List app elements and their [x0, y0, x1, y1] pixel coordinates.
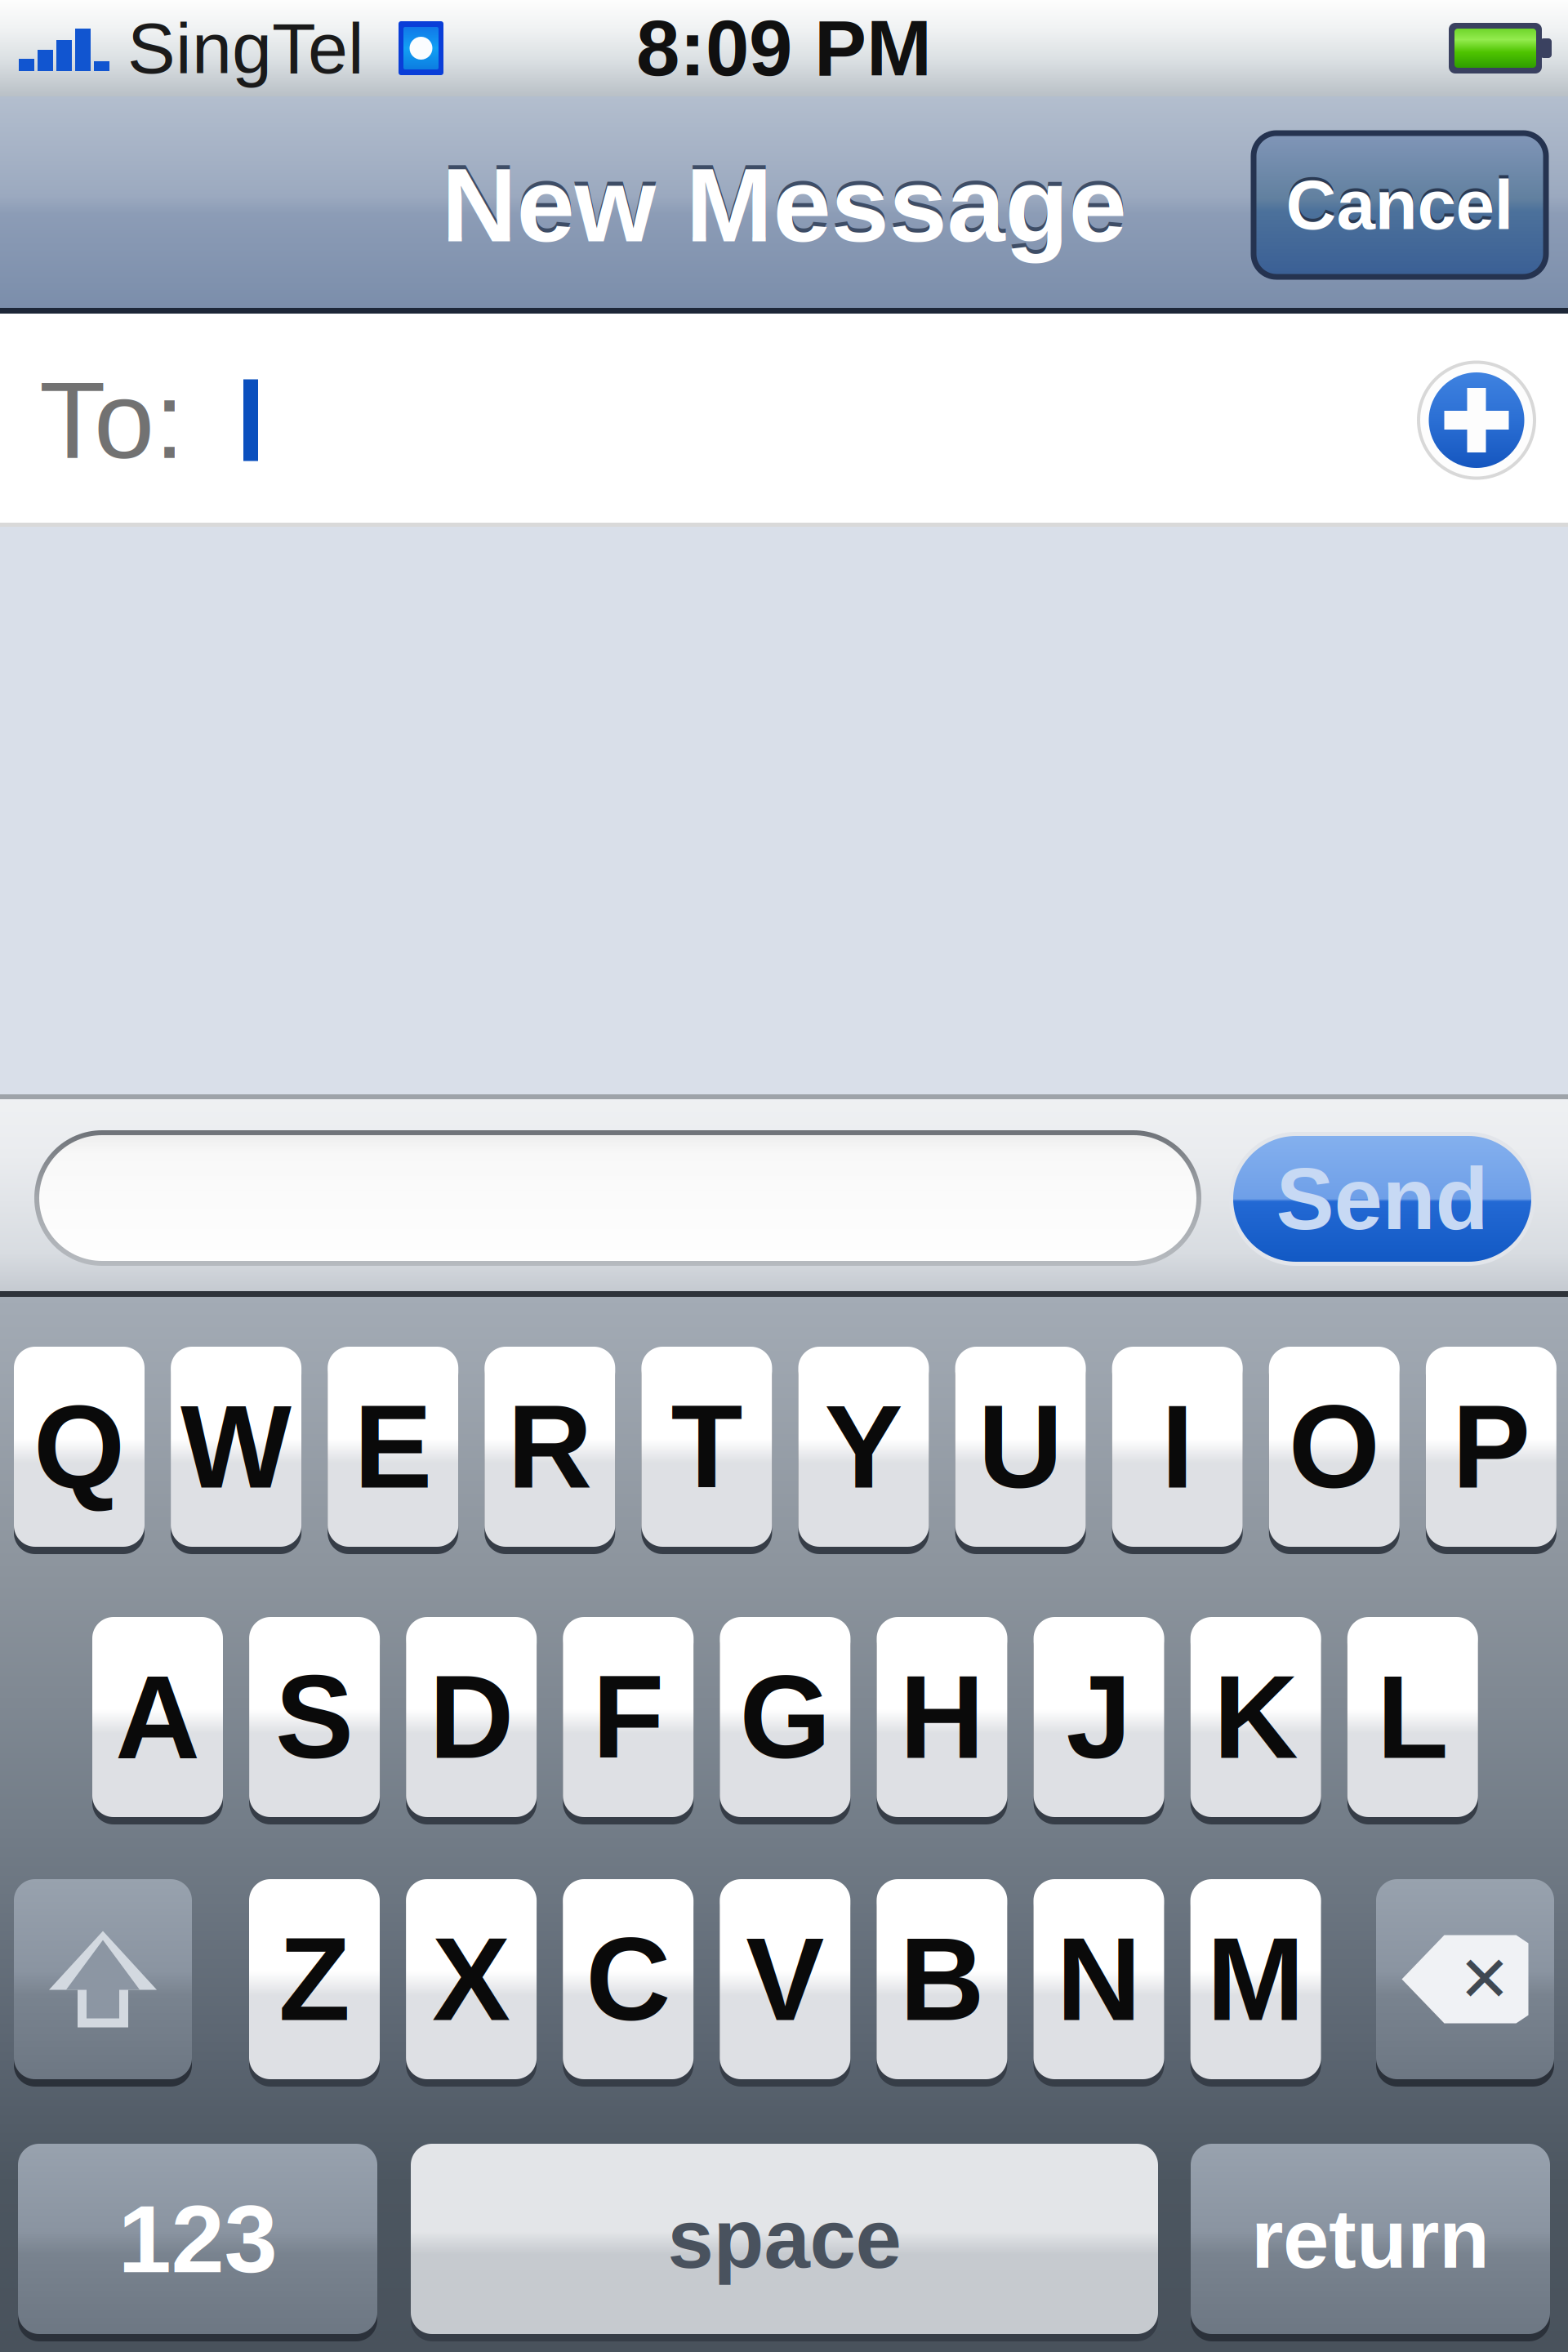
button[interactable]: space — [411, 2144, 1158, 2334]
button[interactable]: U — [955, 1347, 1086, 1547]
button[interactable]: Delete — [1376, 1879, 1554, 2079]
staticText: SingTel — [127, 8, 364, 88]
staticText: Send — [1276, 1150, 1488, 1248]
staticText: A — [115, 1651, 200, 1783]
staticText: Cancel — [1286, 166, 1514, 244]
button[interactable]: Send — [1229, 1132, 1535, 1266]
button[interactable]: 123 — [18, 2144, 377, 2334]
staticText: ✕ — [1458, 1942, 1511, 2016]
staticText: R — [507, 1381, 592, 1512]
staticText: H — [900, 1651, 984, 1783]
button[interactable]: S — [249, 1617, 380, 1817]
staticText: Y — [824, 1381, 903, 1512]
button[interactable]: I — [1112, 1347, 1243, 1547]
button[interactable]: E — [328, 1347, 458, 1547]
staticText: New Message — [441, 143, 1127, 259]
staticText: Q — [33, 1381, 125, 1512]
staticText: I — [1161, 1381, 1194, 1512]
staticText: L — [1377, 1651, 1449, 1783]
staticText: W — [181, 1381, 292, 1512]
staticText: N — [1056, 1914, 1141, 2045]
button[interactable]: W — [171, 1347, 301, 1547]
staticText: U — [978, 1381, 1063, 1512]
staticText: S — [275, 1651, 354, 1783]
staticText: return — [1251, 2193, 1490, 2285]
button[interactable]: K — [1190, 1617, 1321, 1817]
button[interactable]: P — [1426, 1347, 1556, 1547]
staticText: D — [429, 1651, 514, 1783]
staticText: Z — [278, 1914, 350, 2045]
staticText: space — [668, 2193, 901, 2285]
staticText: F — [592, 1651, 664, 1783]
staticText: P — [1452, 1381, 1530, 1512]
button[interactable]: Cancel — [1254, 133, 1546, 277]
staticText: New Message — [441, 147, 1127, 263]
button[interactable]: G — [720, 1617, 850, 1817]
button[interactable]: Y — [798, 1347, 929, 1547]
button[interactable]: Shift — [14, 1879, 192, 2079]
staticText: B — [899, 1914, 984, 2045]
button[interactable]: J — [1034, 1617, 1164, 1817]
button[interactable]: F — [563, 1617, 694, 1817]
button[interactable]: L — [1347, 1617, 1478, 1817]
staticText: O — [1289, 1381, 1380, 1512]
staticText: V — [746, 1914, 824, 2045]
button[interactable]: M — [1190, 1879, 1321, 2079]
staticText: Cancel — [1286, 163, 1514, 241]
staticText: X — [432, 1914, 510, 2045]
staticText: M — [1207, 1914, 1305, 2045]
staticText: E — [354, 1381, 432, 1512]
staticText: K — [1213, 1651, 1298, 1783]
button[interactable]: return — [1191, 2144, 1550, 2334]
button[interactable]: X — [406, 1879, 537, 2079]
button[interactable]: R — [485, 1347, 615, 1547]
button[interactable]: D — [406, 1617, 537, 1817]
staticText: 123 — [118, 2185, 277, 2292]
button[interactable]: H — [877, 1617, 1007, 1817]
staticText: G — [739, 1651, 831, 1783]
button[interactable]: C — [563, 1879, 694, 2079]
button[interactable]: Q — [14, 1347, 145, 1547]
button[interactable]: Z — [249, 1879, 380, 2079]
staticText: J — [1066, 1651, 1132, 1783]
staticText: To: — [39, 359, 185, 481]
staticText: T — [671, 1381, 743, 1512]
button[interactable]: N — [1033, 1879, 1164, 2079]
button[interactable]: T — [641, 1347, 772, 1547]
staticText: 8:09 PM — [636, 4, 932, 92]
button[interactable]: O — [1269, 1347, 1400, 1547]
button[interactable]: A — [92, 1617, 223, 1817]
button[interactable]: Add contact — [1411, 355, 1542, 486]
staticText: C — [586, 1914, 671, 2045]
button[interactable]: V — [720, 1879, 850, 2079]
button[interactable]: B — [877, 1879, 1007, 2079]
